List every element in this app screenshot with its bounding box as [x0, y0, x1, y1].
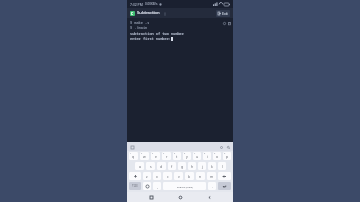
- button[interactable]: q: [129, 152, 138, 160]
- button[interactable]: More options: [162, 11, 167, 16]
- button[interactable]: c: [163, 172, 172, 180]
- button[interactable]: a: [135, 162, 144, 170]
- staticText: c: [167, 174, 169, 179]
- button[interactable]: English (India): [163, 182, 206, 190]
- staticText: s: [150, 164, 152, 169]
- button[interactable]: h: [188, 162, 196, 170]
- staticText: g: [181, 164, 184, 169]
- button[interactable]: k: [208, 162, 216, 170]
- staticText: $ make -s: [130, 20, 150, 25]
- staticText: subtraction of two number: [130, 31, 184, 36]
- button[interactable]: o: [213, 152, 221, 160]
- staticText: m: [210, 174, 214, 179]
- staticText: enter first number:: [130, 36, 171, 41]
- staticText: j: [202, 164, 203, 169]
- button[interactable]: Recents: [146, 192, 156, 202]
- staticText: r: [166, 154, 168, 159]
- button[interactable]: Emoji: [143, 182, 151, 190]
- button[interactable]: b: [185, 172, 194, 180]
- button[interactable]: Search: [226, 145, 230, 149]
- staticText: u: [196, 154, 199, 159]
- staticText: d: [160, 164, 163, 169]
- button[interactable]: ,: [153, 182, 161, 190]
- staticText: h: [191, 164, 194, 169]
- button[interactable]: e: [151, 152, 160, 160]
- button[interactable]: v: [174, 172, 183, 180]
- staticText: 8: [204, 152, 206, 155]
- staticText: w: [143, 154, 146, 159]
- button[interactable]: Clear: [227, 21, 231, 25]
- staticText: 2: [141, 152, 143, 155]
- button[interactable]: x: [153, 172, 161, 180]
- button[interactable]: Back: [204, 192, 214, 202]
- staticText: z: [146, 174, 148, 179]
- button[interactable]: p: [223, 152, 231, 160]
- button[interactable]: u: [193, 152, 201, 160]
- staticText: 4: [163, 152, 165, 155]
- staticText: t: [176, 154, 178, 159]
- staticText: q: [132, 154, 135, 159]
- button[interactable]: l: [218, 162, 226, 170]
- button[interactable]: Settings: [222, 21, 226, 25]
- staticText: 1: [130, 152, 132, 155]
- staticText: f: [171, 164, 173, 169]
- button[interactable]: n: [196, 172, 205, 180]
- button[interactable]: App icon: [130, 11, 135, 16]
- button[interactable]: Settings: [219, 145, 223, 149]
- staticText: C: [131, 11, 134, 16]
- staticText: Subtraction: [137, 10, 160, 16]
- button[interactable]: t: [173, 152, 181, 160]
- button[interactable]: Keyboard menu: [130, 145, 134, 149]
- button[interactable]: y: [183, 152, 191, 160]
- button[interactable]: s: [146, 162, 155, 170]
- staticText: .: [212, 184, 213, 189]
- button[interactable]: z: [143, 172, 151, 180]
- staticText: $ ./main: [130, 25, 148, 30]
- staticText: 0.00KB/s: [145, 2, 158, 6]
- staticText: 0: [224, 152, 226, 155]
- button[interactable]: w: [140, 152, 149, 160]
- staticText: 3: [152, 152, 154, 155]
- staticText: i: [207, 154, 208, 159]
- staticText: l: [222, 164, 223, 169]
- button[interactable]: i: [203, 152, 211, 160]
- staticText: x: [156, 174, 158, 179]
- button[interactable]: r: [162, 152, 171, 160]
- button[interactable]: Enter: [218, 182, 231, 190]
- staticText: v: [178, 174, 180, 179]
- staticText: b: [188, 174, 191, 179]
- staticText: 6: [184, 152, 186, 155]
- staticText: e: [155, 154, 157, 159]
- button[interactable]: ?123: [129, 182, 141, 190]
- button[interactable]: Exit: [216, 10, 230, 17]
- button[interactable]: Backspace: [218, 172, 231, 180]
- button[interactable]: Shift: [129, 172, 141, 180]
- staticText: y: [186, 154, 188, 159]
- staticText: 5: [174, 152, 176, 155]
- staticText: ?123: [132, 184, 138, 188]
- staticText: p: [226, 154, 229, 159]
- button[interactable]: j: [198, 162, 206, 170]
- button[interactable]: g: [178, 162, 186, 170]
- staticText: o: [216, 154, 219, 159]
- staticText: Exit: [222, 11, 228, 16]
- staticText: English (India): [177, 185, 193, 188]
- button[interactable]: Home: [175, 192, 185, 202]
- button[interactable]: f: [168, 162, 176, 170]
- staticText: ,: [157, 184, 158, 189]
- button[interactable]: d: [157, 162, 166, 170]
- staticText: n: [199, 174, 202, 179]
- button[interactable]: m: [207, 172, 216, 180]
- staticText: 7:32 PM: [130, 2, 143, 7]
- staticText: a: [139, 164, 141, 169]
- staticText: k: [211, 164, 213, 169]
- staticText: 7: [194, 152, 196, 155]
- button[interactable]: .: [208, 182, 216, 190]
- staticText: 9: [214, 152, 216, 155]
